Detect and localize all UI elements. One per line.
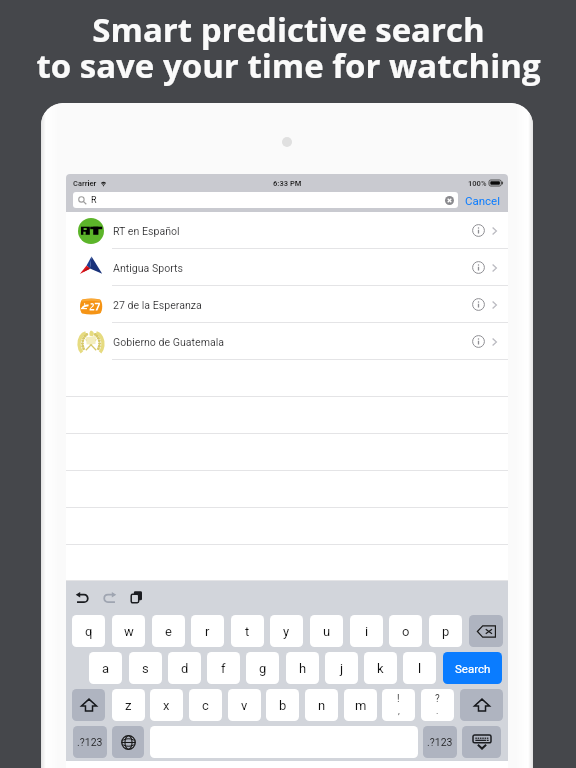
button[interactable]: Search bbox=[443, 652, 502, 684]
staticText: p bbox=[442, 624, 450, 639]
button[interactable]: Undo bbox=[74, 588, 91, 606]
button[interactable]: Paste bbox=[128, 588, 145, 606]
staticText: g bbox=[259, 661, 267, 676]
staticText: Carrier bbox=[73, 179, 97, 188]
button[interactable]: R bbox=[73, 192, 458, 208]
staticText: q bbox=[85, 624, 93, 639]
button[interactable]: s bbox=[129, 652, 162, 684]
button[interactable]: RT en Español bbox=[66, 212, 508, 249]
staticText: k bbox=[377, 661, 384, 676]
button[interactable]: Clear bbox=[445, 196, 454, 205]
button[interactable]: j bbox=[325, 652, 358, 684]
button[interactable]: ! bbox=[382, 689, 415, 721]
button[interactable]: z bbox=[112, 689, 145, 721]
button[interactable]: 27 de la Esperanza bbox=[66, 286, 508, 323]
button[interactable]: u bbox=[310, 615, 343, 647]
button[interactable]: e bbox=[152, 615, 185, 647]
button[interactable]: .?123 bbox=[423, 726, 457, 758]
button[interactable]: x bbox=[150, 689, 183, 721]
button[interactable]: c bbox=[189, 689, 222, 721]
button[interactable]: o bbox=[389, 615, 422, 647]
button[interactable]: h bbox=[286, 652, 319, 684]
staticText: z bbox=[125, 698, 132, 713]
button[interactable]: v bbox=[228, 689, 261, 721]
button[interactable]: .?123 bbox=[73, 726, 107, 758]
button[interactable]: w bbox=[112, 615, 145, 647]
staticText: w bbox=[124, 624, 134, 639]
button[interactable]: Backspace bbox=[469, 615, 503, 647]
staticText: n bbox=[318, 698, 326, 713]
staticText: x bbox=[163, 698, 170, 713]
button[interactable]: k bbox=[364, 652, 397, 684]
button[interactable]: Antigua Sports bbox=[66, 249, 508, 286]
staticText: , bbox=[398, 706, 400, 717]
staticText: o bbox=[402, 624, 410, 639]
button[interactable]: a bbox=[89, 652, 122, 684]
button[interactable]: ? bbox=[421, 689, 454, 721]
button[interactable]: r bbox=[191, 615, 224, 647]
staticText: h bbox=[299, 661, 307, 676]
staticText: Gobierno de Guatemala bbox=[113, 336, 225, 348]
button[interactable]: i bbox=[350, 615, 383, 647]
button[interactable]: Gobierno de Guatemala bbox=[66, 323, 508, 360]
staticText: Smart predictive search bbox=[92, 7, 485, 52]
button[interactable]: m bbox=[344, 689, 377, 721]
staticText: RT en Español bbox=[113, 225, 180, 237]
staticText: .?123 bbox=[427, 736, 453, 748]
button[interactable]: Cancel bbox=[465, 192, 501, 208]
staticText: y bbox=[283, 624, 290, 639]
staticText: t bbox=[245, 624, 250, 639]
button[interactable]: n bbox=[305, 689, 338, 721]
button[interactable]: f bbox=[207, 652, 240, 684]
staticText: 6:33 PM bbox=[273, 179, 302, 188]
staticText: to save your time for watching bbox=[36, 43, 541, 88]
button[interactable]: p bbox=[429, 615, 462, 647]
staticText: Cancel bbox=[465, 194, 501, 207]
button[interactable]: q bbox=[72, 615, 105, 647]
staticText: Antigua Sports bbox=[113, 262, 184, 274]
staticText: d bbox=[181, 661, 189, 676]
staticText: . bbox=[436, 706, 439, 717]
staticText: b bbox=[279, 698, 287, 713]
button[interactable]: y bbox=[270, 615, 303, 647]
staticText: v bbox=[241, 698, 248, 713]
button[interactable]: Shift bbox=[460, 689, 503, 721]
staticText: ? bbox=[435, 693, 440, 705]
button[interactable]: Redo bbox=[101, 588, 118, 606]
staticText: e bbox=[165, 624, 172, 639]
button[interactable]: Shift bbox=[72, 689, 105, 721]
staticText: m bbox=[355, 698, 367, 713]
staticText: a bbox=[102, 661, 110, 676]
staticText: ! bbox=[397, 693, 400, 705]
button[interactable]: Change language bbox=[112, 726, 144, 758]
button[interactable]: b bbox=[266, 689, 299, 721]
staticText: s bbox=[142, 661, 149, 676]
button[interactable]: g bbox=[246, 652, 279, 684]
button[interactable]: l bbox=[403, 652, 436, 684]
staticText: 100% bbox=[468, 179, 487, 188]
staticText: c bbox=[202, 698, 209, 713]
staticText: u bbox=[323, 624, 331, 639]
staticText: i bbox=[365, 624, 369, 639]
button[interactable]: d bbox=[168, 652, 201, 684]
button[interactable]: Hide keyboard bbox=[462, 726, 501, 758]
staticText: l bbox=[418, 661, 422, 676]
staticText: f bbox=[221, 661, 226, 676]
button[interactable]: t bbox=[231, 615, 264, 647]
staticText: R bbox=[91, 195, 97, 206]
staticText: j bbox=[340, 661, 344, 676]
staticText: Search bbox=[455, 662, 491, 675]
staticText: r bbox=[205, 624, 210, 639]
staticText: .?123 bbox=[77, 736, 103, 748]
staticText: 27 de la Esperanza bbox=[113, 299, 202, 311]
